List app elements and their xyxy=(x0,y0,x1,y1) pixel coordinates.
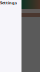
staticText: Settings xyxy=(0,0,17,5)
